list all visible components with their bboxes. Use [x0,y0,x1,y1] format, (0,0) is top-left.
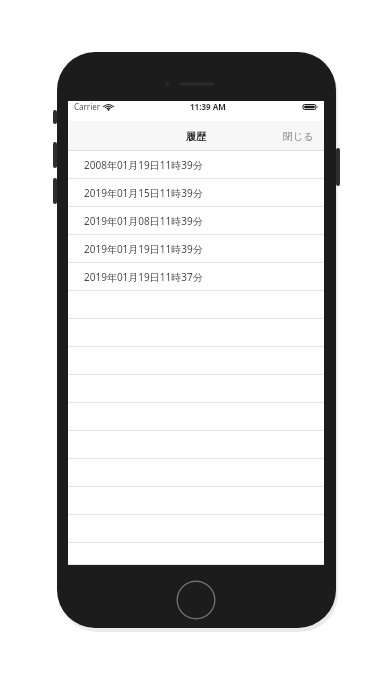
staticText: 11:39 AM [190,101,226,112]
button[interactable]: Home [176,580,216,620]
button[interactable]: 履歴 [180,126,212,147]
button[interactable]: 2008年01月19日11時39分 [68,151,324,179]
button[interactable]: 2019年01月19日11時37分 [68,263,324,291]
button[interactable]: 2019年01月19日11時39分 [68,235,324,263]
staticText: 履歴 [186,130,206,143]
staticText: 2019年01月19日11時37分 [84,270,203,284]
button[interactable]: 2019年01月15日11時39分 [68,179,324,207]
staticText: 2019年01月19日11時39分 [84,242,203,256]
staticText: Carrier [74,101,101,112]
staticText: 2008年01月19日11時39分 [84,158,203,172]
staticText: 2019年01月08日11時39分 [84,214,203,228]
staticText: 閉じる [283,130,314,143]
staticText: 2019年01月15日11時39分 [84,186,203,200]
button[interactable]: 閉じる [273,124,324,149]
button[interactable]: 2019年01月08日11時39分 [68,207,324,235]
